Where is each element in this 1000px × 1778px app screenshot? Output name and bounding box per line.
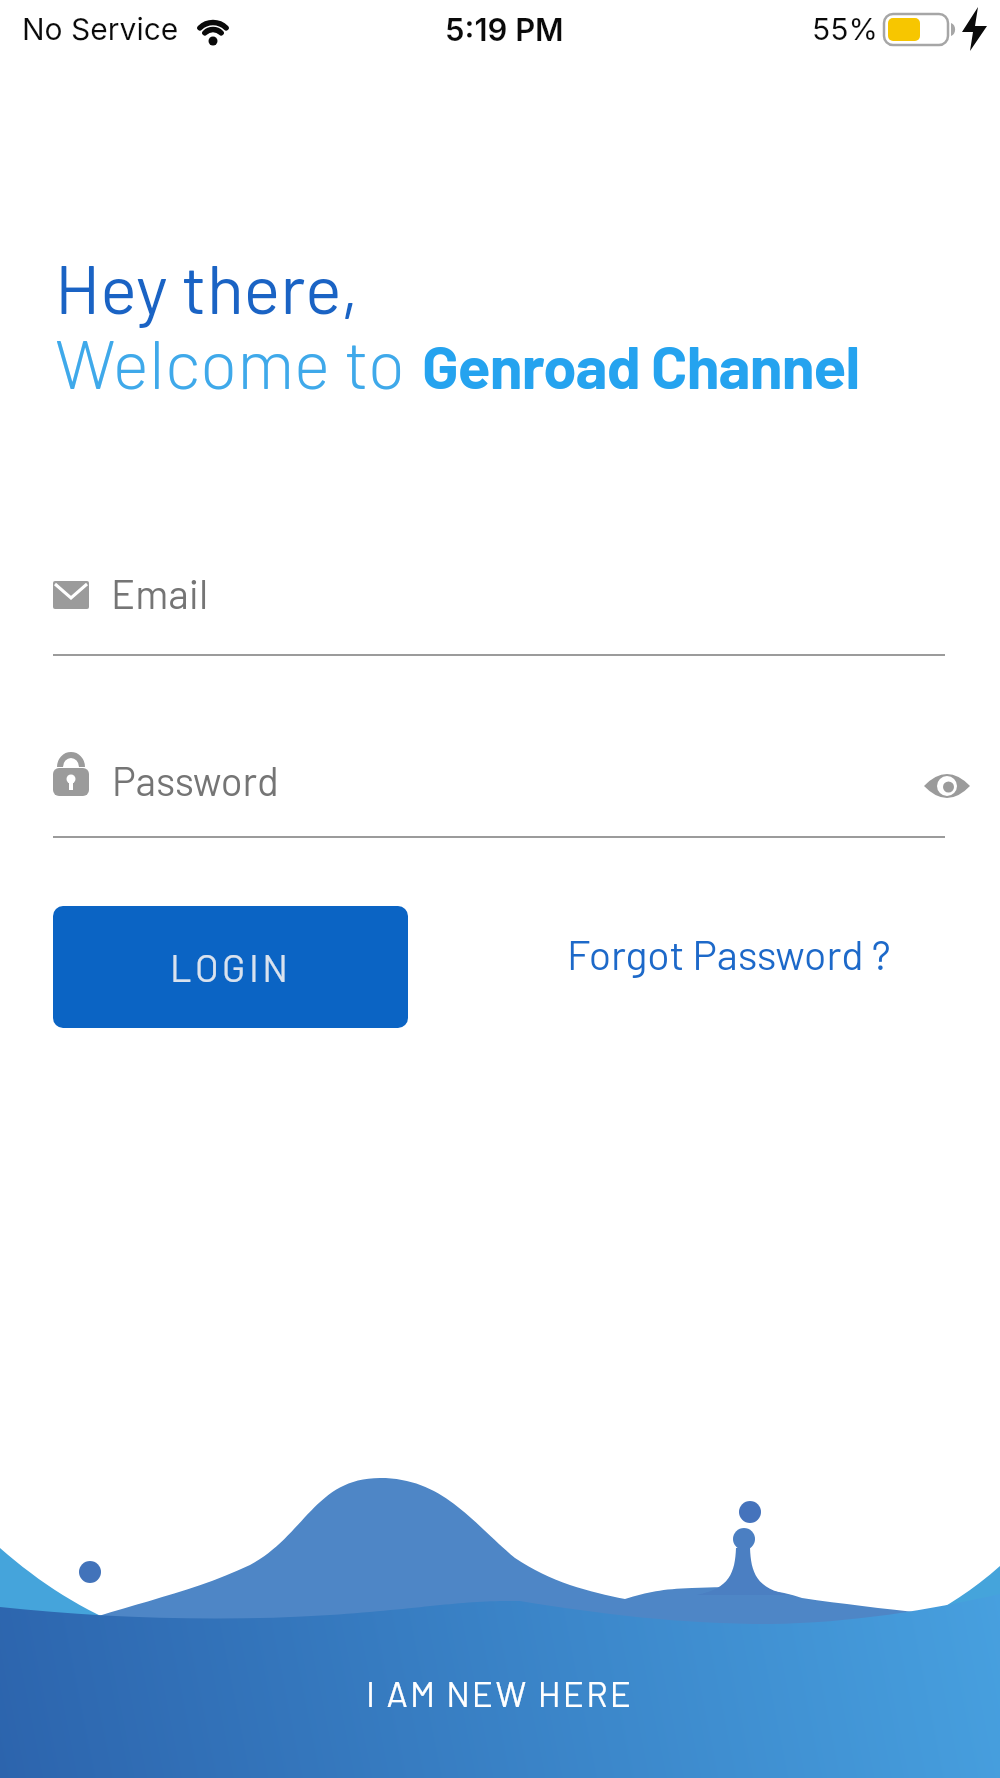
button[interactable] <box>921 757 996 812</box>
staticText: 55% <box>812 11 878 47</box>
staticText: No Service <box>22 11 179 47</box>
button[interactable]: Forgot Password ? <box>567 929 891 978</box>
staticText: I AM NEW HERE <box>366 1672 634 1714</box>
button[interactable]: I AM NEW HERE <box>366 1672 634 1714</box>
staticText: Password <box>112 756 279 804</box>
staticText: Genroad Channel <box>422 329 860 401</box>
button[interactable]: Password <box>53 737 945 838</box>
staticText: Welcome to <box>55 320 405 403</box>
button[interactable]: LOGIN <box>53 906 408 1028</box>
staticText: 5:19 PM <box>445 11 564 49</box>
button[interactable]: Email <box>53 555 945 656</box>
staticText: Hey there, <box>55 245 359 328</box>
staticText: Forgot Password ? <box>567 929 891 978</box>
staticText: Email <box>111 569 209 617</box>
staticText: LOGIN <box>170 944 292 990</box>
